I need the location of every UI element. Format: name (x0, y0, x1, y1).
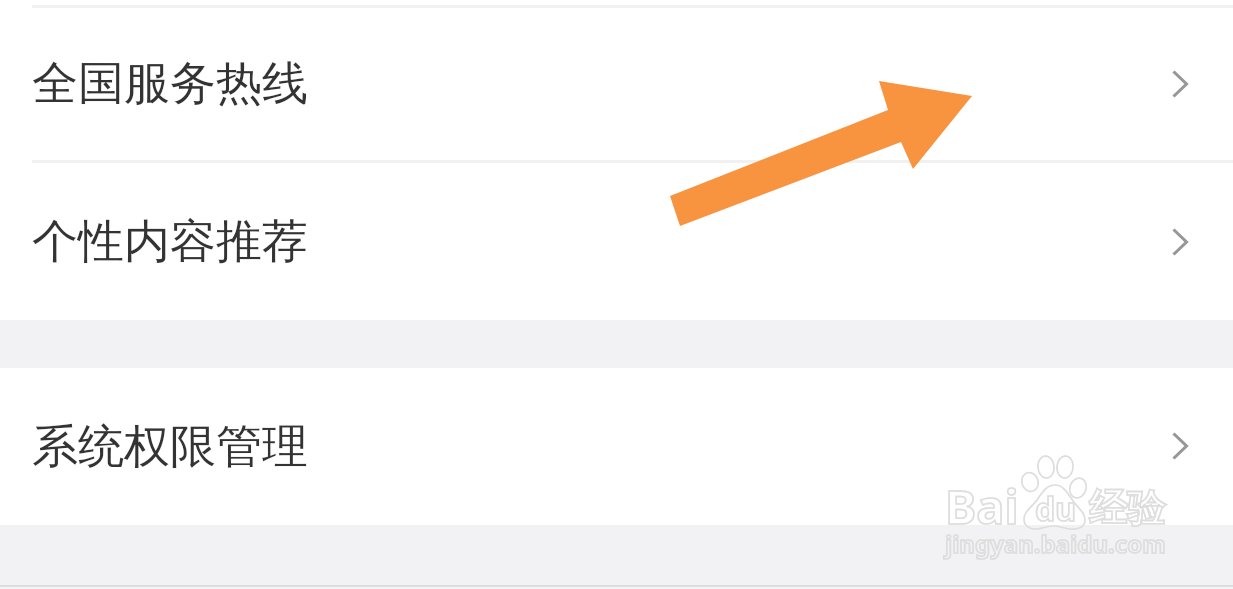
other: Open (1172, 228, 1188, 256)
staticText: 全国服务热线 (32, 55, 308, 113)
other: Open (1172, 432, 1188, 460)
staticText: Bai (945, 474, 1019, 538)
staticText: jingyan.baidu.com (945, 527, 1166, 560)
staticText: du (1035, 487, 1077, 531)
button[interactable]: 全国服务热线 (0, 8, 1233, 160)
button[interactable]: 个性内容推荐 (0, 163, 1233, 320)
staticText: 系统权限管理 (32, 418, 308, 476)
other: Open (1172, 70, 1188, 98)
button[interactable]: 系统权限管理 (0, 368, 1233, 523)
staticText: 个性内容推荐 (32, 213, 308, 271)
staticText: 经验 (1089, 484, 1165, 532)
